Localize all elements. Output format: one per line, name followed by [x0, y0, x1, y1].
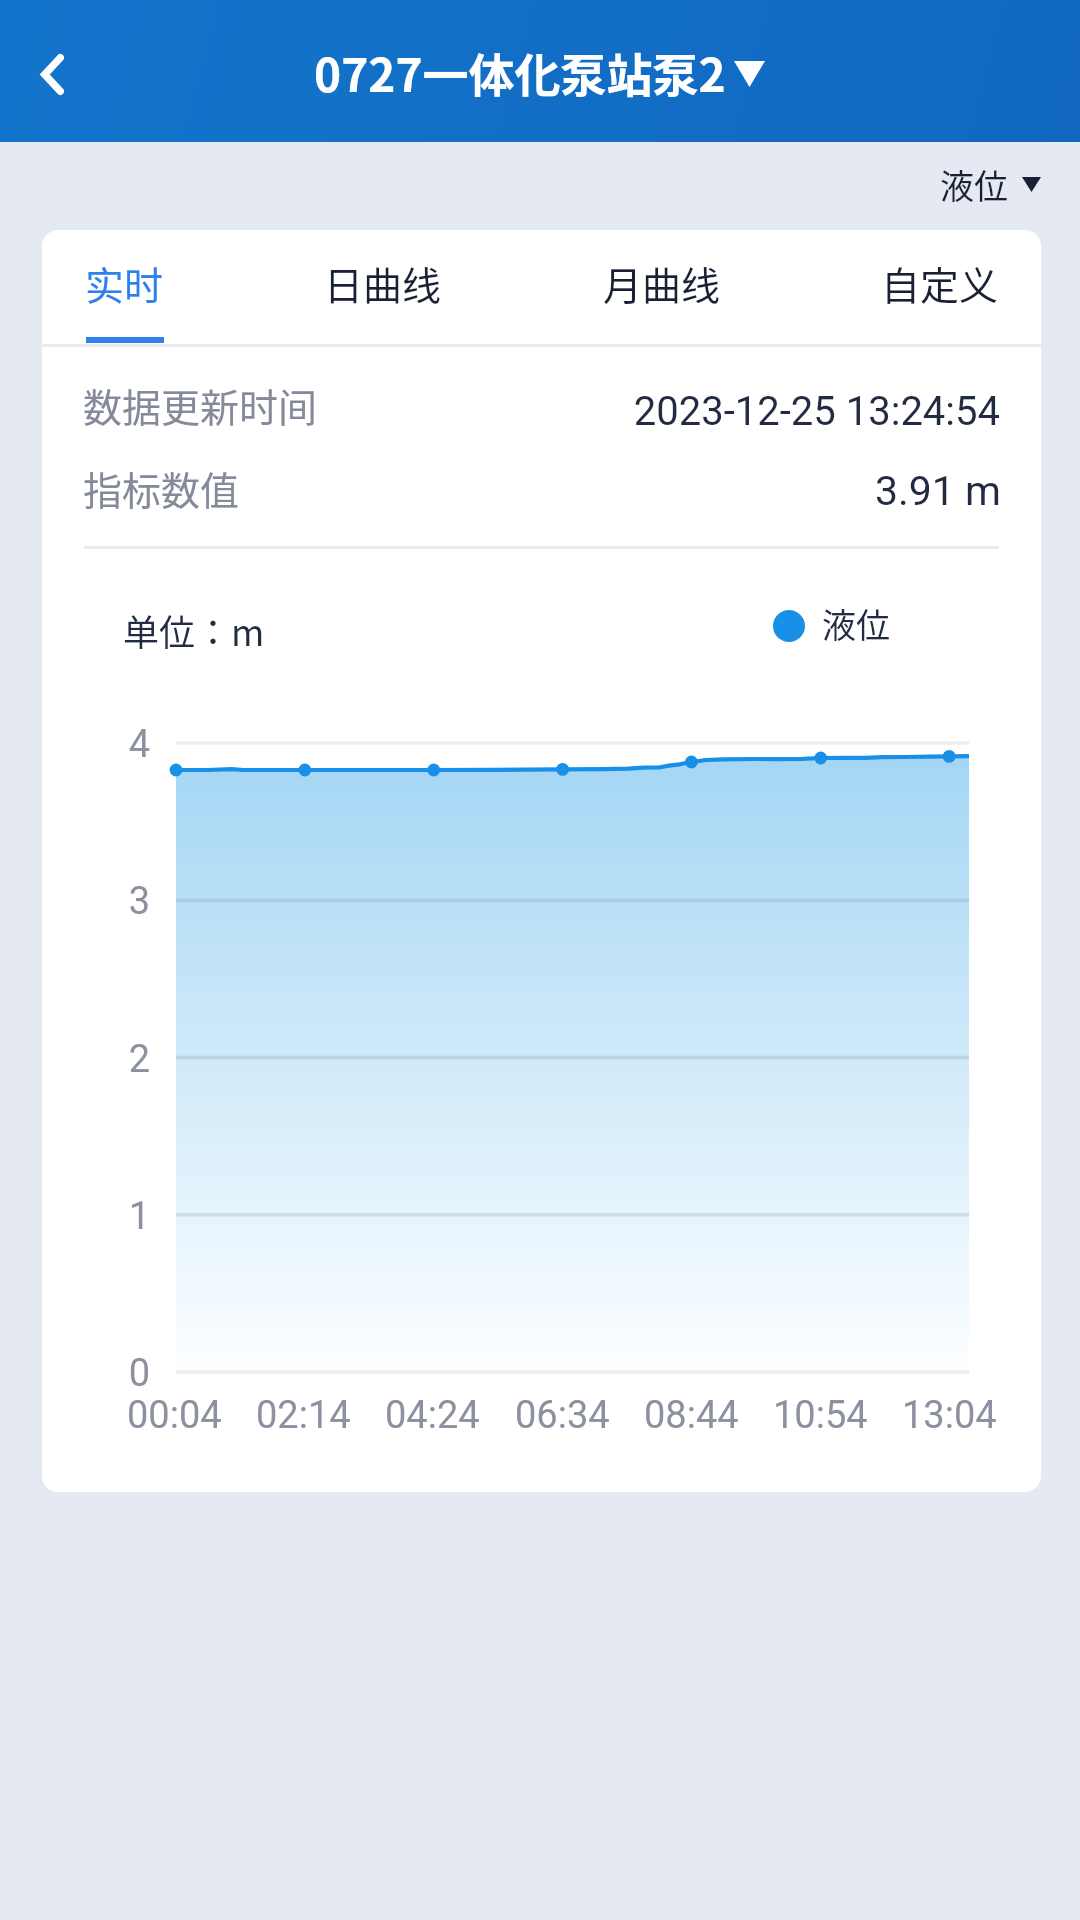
- button[interactable]: 液位: [924, 146, 1057, 223]
- staticText: 02:14: [256, 1393, 351, 1438]
- staticText: 3.91 m: [84, 467, 1001, 515]
- staticText: 00:04: [127, 1393, 222, 1438]
- staticText: 日曲线: [324, 255, 442, 311]
- staticText: 3: [90, 879, 150, 924]
- staticText: 实时: [85, 255, 164, 311]
- staticText: 06:34: [515, 1393, 610, 1438]
- staticText: 1: [90, 1194, 150, 1239]
- staticText: 2023-12-25 13:24:54: [86, 388, 1000, 435]
- staticText: 4: [90, 722, 150, 767]
- staticText: 10:54: [773, 1393, 868, 1438]
- staticText: 2: [90, 1037, 150, 1082]
- staticText: 指标数值: [83, 460, 240, 516]
- staticText: 月曲线: [603, 255, 721, 311]
- staticText: 0: [90, 1351, 150, 1396]
- button[interactable]: 月曲线: [597, 230, 727, 347]
- button[interactable]: 自定义: [875, 230, 1005, 347]
- button[interactable]: 日曲线: [318, 230, 448, 347]
- staticText: 液位: [822, 599, 890, 648]
- staticText: 液位: [940, 160, 1008, 209]
- staticText: 08:44: [644, 1393, 739, 1438]
- staticText: 数据更新时间: [83, 377, 318, 433]
- button[interactable]: Back: [0, 11, 104, 131]
- staticText: 04:24: [385, 1393, 480, 1438]
- staticText: 0727一体化泵站泵2: [314, 39, 726, 106]
- staticText: 自定义: [881, 255, 999, 311]
- staticText: 单位：m: [123, 604, 265, 656]
- staticText: 13:04: [902, 1393, 997, 1438]
- button[interactable]: 实时: [79, 230, 170, 347]
